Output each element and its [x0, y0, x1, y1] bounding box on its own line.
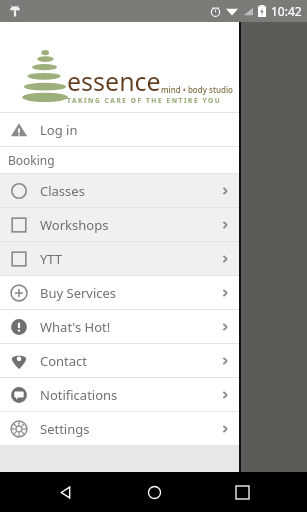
staticText: TAKING CARE OF THE ENTIRE YOU: [67, 96, 222, 105]
button[interactable]: 5:45: [0, 166, 307, 220]
staticText: Barre: [63, 231, 103, 251]
staticText: PM: [18, 141, 35, 156]
staticText: Notifications: [40, 386, 118, 404]
button[interactable]: Back: [41, 472, 89, 512]
staticText: 9:00: [11, 396, 41, 416]
button[interactable]: YTT: [0, 242, 241, 275]
staticText: 8:00: [11, 341, 41, 361]
button[interactable]: Home: [130, 472, 178, 512]
button[interactable]: 7:30: [0, 276, 307, 330]
staticText: Cycle: [63, 121, 101, 141]
button[interactable]: 7:30: [0, 56, 307, 110]
button[interactable]: 8:00: [0, 331, 307, 385]
staticText: Booking: [8, 152, 55, 168]
staticText: PM: [18, 196, 35, 211]
staticText: Buy Services: [40, 284, 117, 302]
staticText: 5:45: [11, 176, 41, 196]
button[interactable]: 9:30: [0, 111, 307, 165]
staticText: PM: [18, 86, 35, 101]
staticText: mind • body studio: [161, 84, 233, 95]
staticText: Instructor: [63, 361, 115, 376]
staticText: essence: [67, 64, 161, 98]
button[interactable]: Contact: [0, 344, 241, 377]
button[interactable]: 9:00: [0, 386, 307, 440]
staticText: Instructor: [63, 141, 115, 156]
staticText: 9:30: [11, 121, 41, 141]
button[interactable]: 6:00: [0, 221, 307, 275]
button[interactable]: Notifications: [0, 378, 241, 411]
staticText: YTT: [40, 250, 63, 268]
staticText: Workshops: [40, 216, 109, 234]
staticText: Settings: [40, 420, 90, 438]
staticText: 7:30: [11, 441, 41, 461]
staticText: Instructor: [63, 86, 115, 101]
staticText: Classes: [40, 182, 85, 200]
staticText: Instructor: [63, 306, 115, 321]
staticText: 10:42: [271, 3, 302, 19]
button[interactable]: Recents: [218, 472, 266, 512]
button[interactable]: Workshops: [0, 208, 241, 241]
button[interactable]: Classes: [0, 174, 241, 207]
staticText: Flow: [63, 341, 96, 361]
staticText: Yoga I: [63, 66, 108, 86]
staticText: Sculpt: [63, 396, 108, 416]
button[interactable]: Buy Services: [0, 276, 241, 309]
staticText: PM: [18, 416, 35, 431]
button[interactable]: 7:30: [0, 441, 307, 472]
staticText: PM: [18, 251, 35, 266]
staticText: What's Hot!: [40, 318, 111, 336]
staticText: PM: [18, 361, 35, 376]
staticText: 7:30: [11, 66, 41, 86]
staticText: 6:00: [11, 231, 41, 251]
staticText: 7:30: [11, 286, 41, 306]
staticText: Yoga II: [63, 286, 113, 306]
staticText: Power Mat: [63, 176, 141, 196]
button[interactable]: Settings: [0, 412, 241, 445]
staticText: Log in: [40, 121, 78, 139]
staticText: PM: [18, 306, 35, 321]
staticText: Instructor: [63, 416, 115, 431]
button[interactable]: What's Hot!: [0, 310, 241, 343]
staticText: Yoga I: [63, 441, 108, 461]
button[interactable]: Log in: [0, 113, 241, 146]
staticText: Contact: [40, 352, 88, 370]
